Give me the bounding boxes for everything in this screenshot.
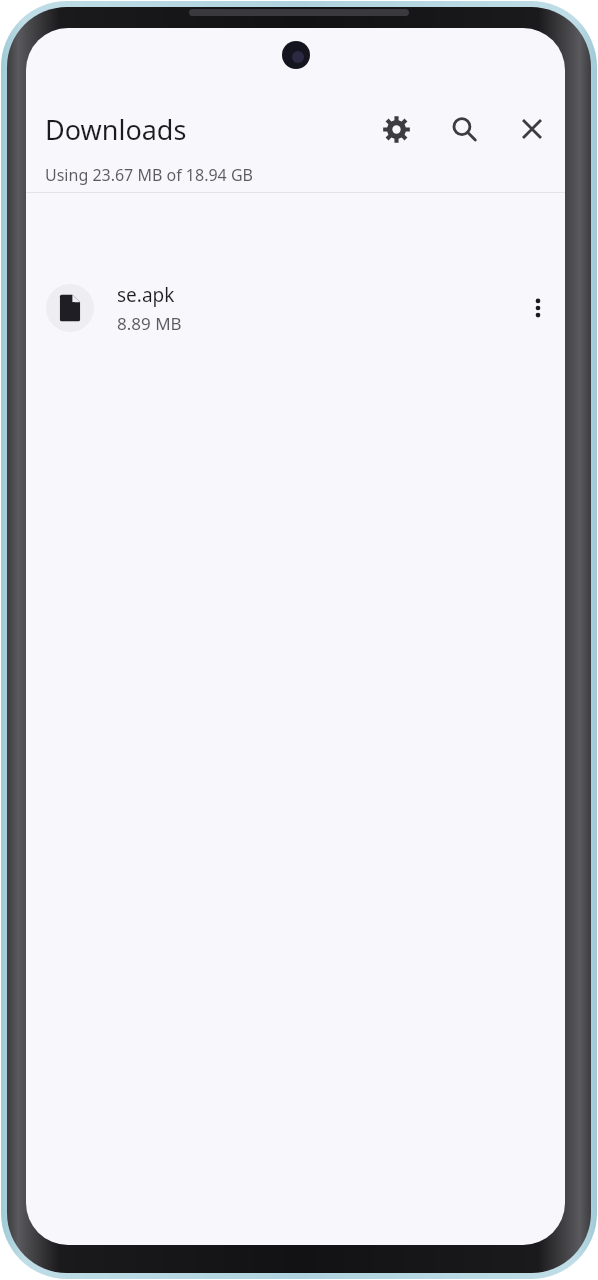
button[interactable]: se.apk	[26, 266, 565, 350]
staticText: Using 23.67 MB of 18.94 GB	[45, 164, 253, 186]
staticText: Downloads	[45, 111, 187, 148]
button[interactable]: More options	[514, 284, 562, 332]
button[interactable]: Close	[508, 105, 556, 153]
button[interactable]: Search	[440, 105, 488, 153]
staticText: se.apk	[117, 282, 175, 308]
staticText: 8.89 MB	[117, 312, 182, 335]
button[interactable]: Settings	[372, 105, 420, 153]
